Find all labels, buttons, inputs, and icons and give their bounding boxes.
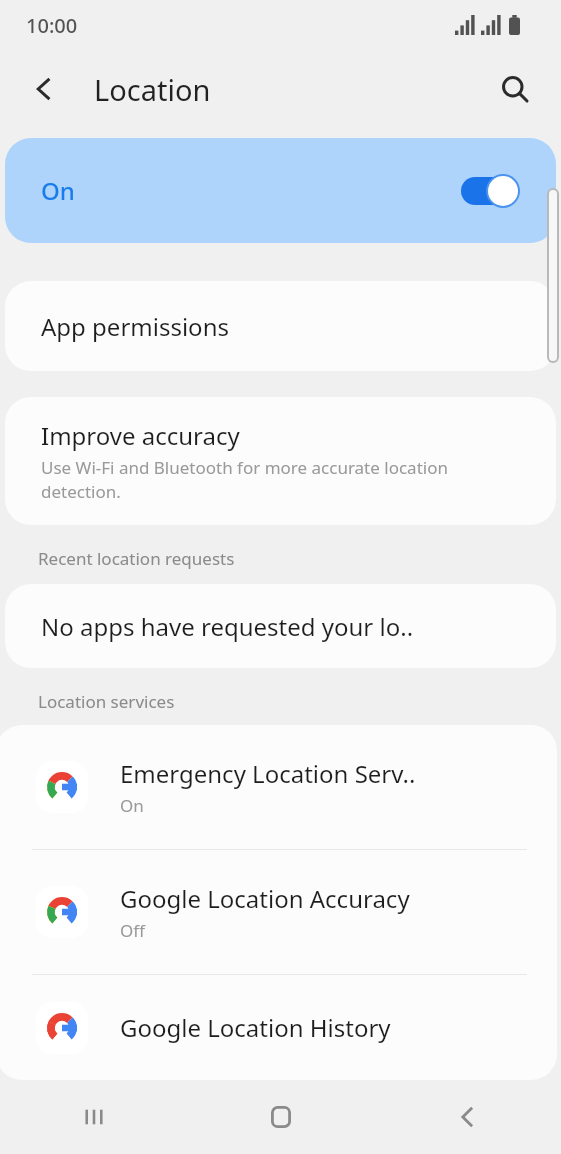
button[interactable]: Search xyxy=(491,65,539,113)
button[interactable]: Google Location History xyxy=(0,975,557,1080)
button[interactable]: Improve accuracy xyxy=(5,397,556,525)
staticText: On xyxy=(41,174,75,207)
staticText: No apps have requested your lo.. xyxy=(41,610,414,643)
button[interactable]: App permissions xyxy=(5,281,556,371)
button[interactable]: Emergency Location Serv.. xyxy=(0,725,557,849)
button[interactable]: Location toggle xyxy=(458,174,520,208)
button[interactable]: Recents xyxy=(0,1080,187,1154)
staticText: Recent location requests xyxy=(38,547,235,570)
staticText: Google Location Accuracy xyxy=(120,882,410,915)
staticText: 10:00 xyxy=(26,12,78,39)
button[interactable]: Back xyxy=(22,67,66,111)
button[interactable]: Google Location Accuracy xyxy=(0,850,557,974)
button[interactable]: On xyxy=(5,138,556,243)
staticText: Improve accuracy xyxy=(41,419,240,452)
staticText: App permissions xyxy=(41,310,229,343)
staticText: Location services xyxy=(38,690,175,713)
staticText: Emergency Location Serv.. xyxy=(120,757,416,790)
button[interactable]: Back xyxy=(374,1080,561,1154)
staticText: Off xyxy=(120,919,145,942)
staticText: Location xyxy=(94,70,211,109)
button[interactable]: Home xyxy=(187,1080,374,1154)
button[interactable]: No apps have requested your lo.. xyxy=(5,584,556,668)
staticText: Google Location History xyxy=(120,1011,391,1044)
staticText: Use Wi-Fi and Bluetooth for more accurat… xyxy=(41,456,526,503)
staticText: On xyxy=(120,794,144,817)
